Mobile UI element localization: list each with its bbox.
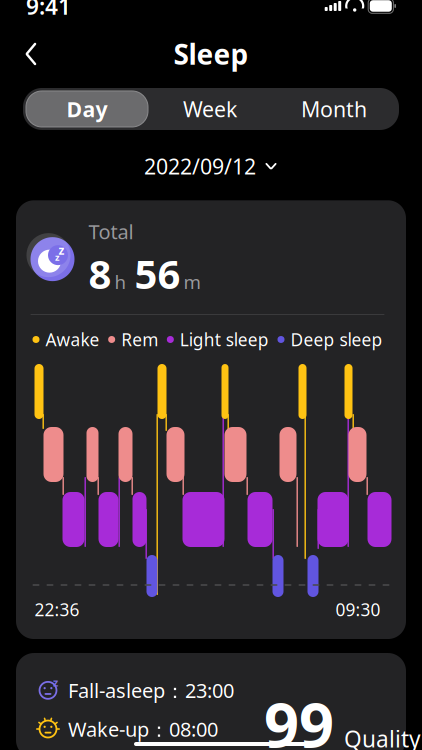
staticText: 8 xyxy=(88,247,111,300)
staticText: Deep sleep xyxy=(290,328,382,351)
staticText: 22:36 xyxy=(34,598,79,621)
staticText: h xyxy=(114,269,126,294)
staticText: m xyxy=(183,269,200,294)
button[interactable]: Week xyxy=(148,91,272,127)
button[interactable]: Day xyxy=(26,91,148,127)
button[interactable]: Month xyxy=(272,91,396,127)
staticText: Day xyxy=(66,95,107,123)
staticText: 2022/09/12 xyxy=(144,152,256,180)
staticText: 56 xyxy=(134,247,180,300)
button[interactable]: 2022/09/12 xyxy=(134,146,288,186)
staticText: Week xyxy=(183,95,237,123)
staticText: Fall-asleep：23:00 xyxy=(68,677,234,704)
staticText: 99 xyxy=(264,683,334,750)
staticText: 09:30 xyxy=(335,598,380,621)
staticText: Wake-up：08:00 xyxy=(68,716,218,742)
staticText: Quality xyxy=(344,724,421,750)
staticText: z xyxy=(55,251,60,263)
staticText: 9:41 xyxy=(26,0,71,21)
staticText: z xyxy=(58,242,64,258)
staticText: z xyxy=(53,675,58,689)
staticText: Month xyxy=(301,95,367,123)
staticText: Total xyxy=(88,218,133,245)
staticText: Awake xyxy=(45,328,99,351)
staticText: Sleep xyxy=(173,35,248,73)
staticText: Light sleep xyxy=(180,328,269,351)
button[interactable]: Back xyxy=(8,33,54,75)
staticText: Rem xyxy=(121,328,158,351)
